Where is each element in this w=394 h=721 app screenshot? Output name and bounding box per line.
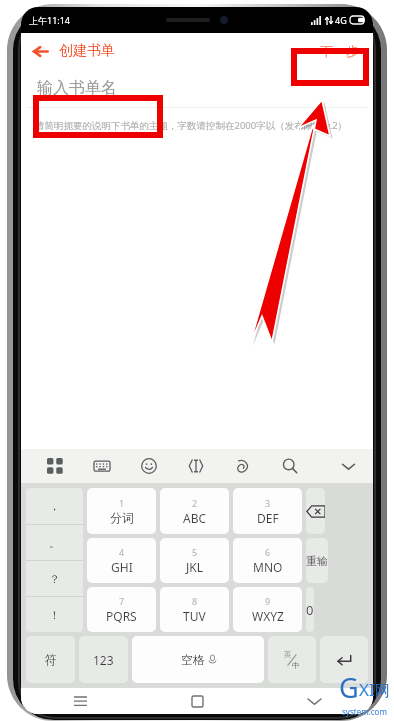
- staticText: TUV: [183, 608, 206, 624]
- button[interactable]: Hide keyboard: [331, 449, 365, 483]
- staticText: 请简明扼要的说明下书单的主题，字数请控制在2000字以（发布限制lv.2）: [35, 119, 348, 132]
- button[interactable]: 请简明扼要的说明下书单的主题，字数请控制在2000字以（发布限制lv.2）: [21, 108, 373, 132]
- button[interactable]: ，: [26, 488, 83, 524]
- staticText: 输入书单名: [37, 78, 117, 98]
- staticText: GHI: [111, 559, 133, 575]
- staticText: 3: [265, 497, 271, 509]
- staticText: PQRS: [106, 608, 137, 624]
- button[interactable]: 2: [160, 488, 229, 534]
- staticText: 中: [292, 661, 300, 670]
- staticText: ，: [49, 499, 60, 513]
- staticText: XI: [359, 678, 375, 701]
- staticText: DEF: [257, 510, 279, 526]
- button[interactable]: Search: [266, 449, 313, 483]
- staticText: 7: [119, 595, 125, 607]
- staticText: 重输: [306, 554, 328, 568]
- button[interactable]: 3: [233, 488, 302, 534]
- button[interactable]: 输入书单名: [21, 69, 373, 107]
- staticText: 9: [265, 595, 271, 607]
- button[interactable]: 7: [87, 587, 156, 632]
- staticText: 0: [306, 601, 314, 619]
- button[interactable]: Attach: [219, 449, 266, 483]
- staticText: 分词: [110, 510, 134, 525]
- staticText: system.com: [342, 706, 387, 717]
- staticText: 1: [119, 497, 125, 509]
- button[interactable]: 符: [26, 636, 75, 683]
- button[interactable]: Recent apps: [21, 688, 139, 714]
- staticText: 5: [192, 546, 198, 558]
- staticText: 上午11:14: [29, 14, 71, 26]
- staticText: 123: [93, 652, 114, 668]
- button[interactable]: Emoji: [125, 449, 172, 483]
- button[interactable]: Backspace: [306, 488, 325, 534]
- staticText: 下一步: [320, 43, 359, 59]
- staticText: ？: [49, 572, 60, 586]
- button[interactable]: 重输: [306, 538, 328, 583]
- staticText: 2: [192, 497, 198, 509]
- button[interactable]: 4: [87, 538, 156, 583]
- staticText: 创建书单: [59, 42, 115, 60]
- staticText: 符: [45, 652, 57, 667]
- button[interactable]: Switch language: [268, 636, 316, 683]
- button[interactable]: 1: [87, 488, 156, 534]
- button[interactable]: 空格: [132, 636, 264, 683]
- staticText: JKL: [186, 559, 203, 575]
- button[interactable]: 下一步: [306, 33, 373, 69]
- staticText: MNO: [253, 559, 283, 575]
- button[interactable]: 0: [306, 587, 314, 632]
- staticText: 英: [284, 650, 292, 659]
- button[interactable]: ？: [26, 561, 83, 596]
- button[interactable]: 123: [79, 636, 128, 683]
- button[interactable]: 5: [160, 538, 229, 583]
- staticText: G: [339, 669, 359, 706]
- button[interactable]: 9: [233, 587, 302, 632]
- staticText: 6: [265, 546, 271, 558]
- button[interactable]: Back: [21, 33, 59, 69]
- staticText: 8: [192, 595, 198, 607]
- staticText: ！: [49, 608, 60, 622]
- button[interactable]: Text edit: [172, 449, 219, 483]
- button[interactable]: Keyboard: [78, 449, 125, 483]
- staticText: WXYZ: [252, 608, 284, 624]
- button[interactable]: 8: [160, 587, 229, 632]
- staticText: 。: [49, 536, 60, 550]
- button[interactable]: Enter: [320, 636, 368, 683]
- button[interactable]: ！: [26, 597, 83, 632]
- staticText: ABC: [183, 510, 207, 526]
- button[interactable]: Home: [139, 688, 256, 714]
- staticText: 空格: [181, 652, 205, 667]
- staticText: 4: [119, 546, 125, 558]
- button[interactable]: 6: [233, 538, 302, 583]
- staticText: 4G: [335, 14, 347, 26]
- staticText: 网: [375, 682, 390, 701]
- button[interactable]: Apps: [31, 449, 78, 483]
- button[interactable]: Back: [256, 688, 373, 714]
